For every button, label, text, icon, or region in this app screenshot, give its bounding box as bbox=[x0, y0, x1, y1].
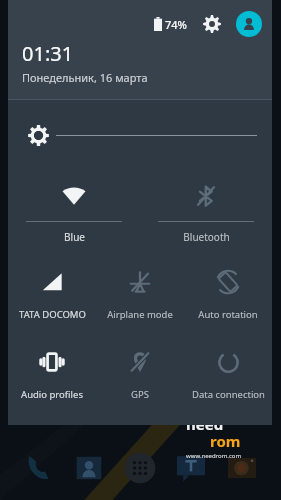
staticText: 74% bbox=[165, 17, 187, 32]
button[interactable]: Bluetooth bbox=[140, 170, 272, 244]
button[interactable]: Data connection bbox=[184, 335, 272, 401]
button[interactable]: Auto rotation bbox=[184, 255, 272, 321]
staticText: Airplane mode bbox=[107, 308, 173, 321]
button[interactable]: Airplane mode bbox=[96, 255, 184, 321]
staticText: need bbox=[186, 414, 224, 434]
button[interactable]: Brightness bbox=[8, 100, 272, 170]
staticText: rom bbox=[210, 431, 241, 451]
staticText: Data connection bbox=[192, 388, 265, 401]
staticText: Auto rotation bbox=[198, 308, 258, 321]
button[interactable]: TATA DOCOMO bbox=[8, 255, 96, 321]
button[interactable]: User profile bbox=[236, 11, 262, 37]
staticText: Bluetooth bbox=[183, 230, 230, 244]
staticText: Blue bbox=[64, 230, 85, 244]
staticText: Понедельник, 16 марта bbox=[22, 70, 148, 85]
staticText: www.needrom.com bbox=[186, 452, 242, 460]
button[interactable]: Audio profiles bbox=[8, 335, 96, 401]
button[interactable]: Settings bbox=[200, 12, 224, 36]
staticText: 01:31 bbox=[22, 40, 74, 67]
button[interactable]: GPS bbox=[96, 335, 184, 401]
staticText: TATA DOCOMO bbox=[19, 308, 86, 321]
button[interactable]: Blue bbox=[8, 170, 140, 244]
staticText: GPS bbox=[131, 388, 149, 401]
staticText: Audio profiles bbox=[21, 388, 83, 401]
